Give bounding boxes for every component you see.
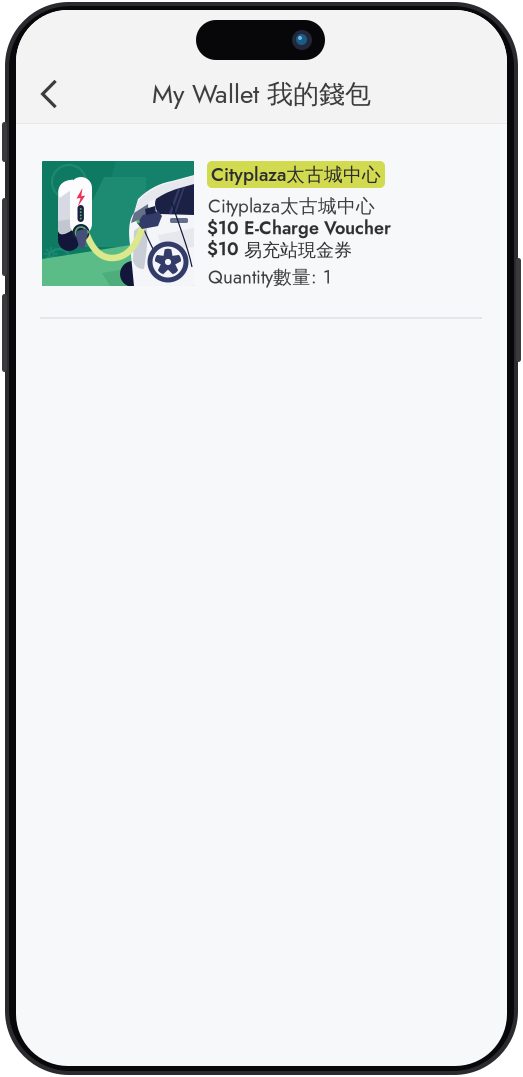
- staticText: Cityplaza太古城中心: [208, 192, 375, 219]
- staticText: Quantity數量: 1: [208, 263, 331, 290]
- button[interactable]: Cityplaza太古城中心: [42, 151, 484, 293]
- staticText: Cityplaza太古城中心: [211, 161, 381, 188]
- staticText: My Wallet 我的錢包: [152, 75, 371, 113]
- button[interactable]: Back: [23, 68, 75, 120]
- staticText: $10 易充站現金券: [207, 236, 352, 262]
- staticText: $10 E-Charge Voucher: [207, 215, 391, 241]
